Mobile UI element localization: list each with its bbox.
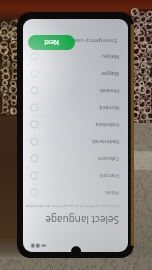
button[interactable]: Magyar (23, 65, 128, 82)
staticText: Magyar (39, 70, 119, 77)
button[interactable]: Emergency use (74, 35, 117, 47)
staticText: Français (39, 172, 119, 179)
staticText: Melayu (39, 53, 119, 60)
button[interactable]: Français (23, 167, 128, 184)
button[interactable]: Nederlands (23, 133, 128, 150)
staticText: Emergency use (74, 37, 117, 45)
staticText: Hrvatski (39, 87, 119, 94)
staticText: Next (44, 38, 59, 47)
staticText: Nederlands (39, 138, 119, 145)
button[interactable]: Hrvatski (23, 82, 128, 99)
staticText: Polski (39, 189, 119, 196)
button[interactable]: Cebuano (23, 150, 128, 167)
button[interactable]: Melayu (23, 48, 128, 65)
staticText: Română (39, 104, 119, 111)
button[interactable]: Polski (23, 184, 128, 201)
button[interactable]: Indonesia (23, 116, 128, 133)
staticText: Cebuano (39, 155, 119, 162)
staticText: Indonesia (39, 121, 119, 128)
button[interactable]: Română (23, 99, 128, 116)
staticText: Select your preferred language from the … (25, 204, 120, 209)
staticText: Select language (45, 214, 119, 227)
button[interactable]: Next (28, 35, 75, 50)
